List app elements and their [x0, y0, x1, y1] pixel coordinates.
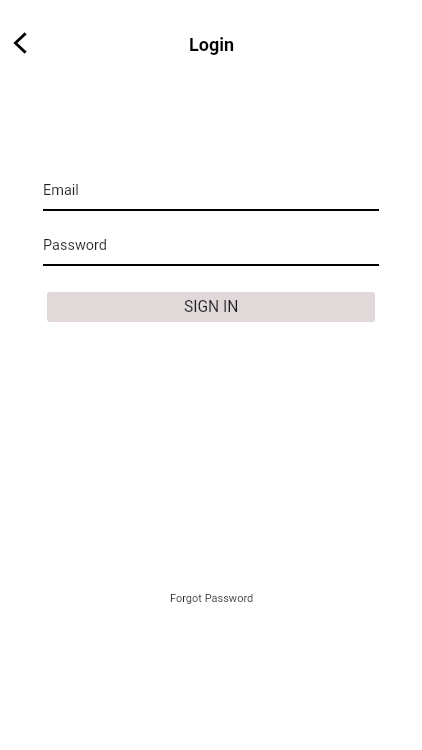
- staticText: Password: [43, 237, 108, 254]
- button[interactable]: SIGN IN: [47, 292, 375, 322]
- button[interactable]: Email: [43, 182, 379, 211]
- button[interactable]: Password: [43, 237, 379, 266]
- staticText: SIGN IN: [184, 298, 239, 316]
- staticText: Email: [43, 182, 79, 199]
- button[interactable]: Back: [0, 21, 42, 64]
- staticText: Forgot Password: [170, 592, 254, 605]
- staticText: Login: [189, 34, 235, 55]
- button[interactable]: Forgot Password: [164, 590, 260, 607]
